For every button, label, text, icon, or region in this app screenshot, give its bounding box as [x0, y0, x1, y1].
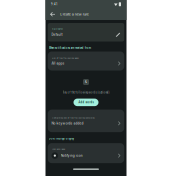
staticText: Rule name [51, 27, 62, 30]
staticText: 9:41 [51, 3, 58, 6]
staticText: Create a new rule [60, 12, 89, 16]
staticText: Icon and label [51, 147, 65, 150]
staticText: When notifications are received from [49, 46, 91, 49]
staticText: Don't interrupt display [49, 137, 74, 140]
button[interactable]: Containing one of the following keywords [48, 110, 124, 132]
staticText: Any of the following apps [51, 56, 78, 59]
button[interactable]: Icon and label [48, 143, 124, 163]
button[interactable]: Add words [73, 99, 98, 106]
staticText: No keywords added [51, 121, 83, 125]
staticText: Containing one of the following keywords [51, 116, 94, 119]
button[interactable]: Back [50, 12, 55, 17]
staticText: Any of the following words (optional) [62, 91, 109, 94]
staticText: Add words [78, 101, 93, 104]
staticText: Notifying icon [61, 154, 83, 158]
staticText: Default [51, 33, 62, 37]
staticText: & [85, 80, 87, 84]
button[interactable]: Any of the following apps [48, 51, 124, 70]
staticText: All apps [51, 61, 64, 65]
